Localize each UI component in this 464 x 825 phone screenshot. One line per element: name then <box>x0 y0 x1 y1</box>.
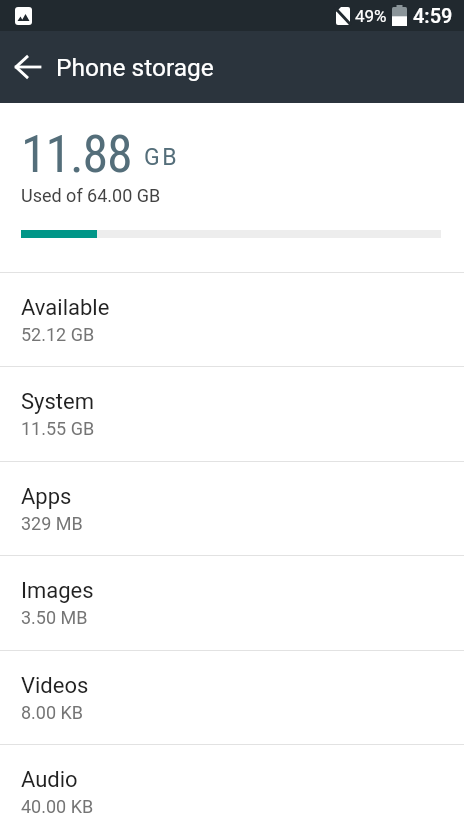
staticText: Phone storage <box>56 53 214 82</box>
staticText: 3.50 MB <box>21 607 88 628</box>
staticText: 4:59 <box>413 4 453 27</box>
staticText: 11.55 GB <box>21 418 95 439</box>
staticText: Images <box>21 578 94 604</box>
button[interactable] <box>0 31 56 103</box>
staticText: Apps <box>21 484 72 510</box>
staticText: Available <box>21 295 110 321</box>
staticText: Used of 64.00 GB <box>21 185 161 206</box>
staticText: GB <box>144 144 179 171</box>
staticText: 49% <box>355 6 387 26</box>
button[interactable]: Available <box>0 272 464 366</box>
button[interactable]: System <box>0 366 464 461</box>
button[interactable]: Apps <box>0 461 464 555</box>
staticText: Audio <box>21 767 78 793</box>
staticText: 52.12 GB <box>21 324 95 345</box>
staticText: Videos <box>21 673 89 699</box>
button[interactable]: Images <box>0 555 464 650</box>
staticText: 8.00 KB <box>21 702 84 723</box>
button[interactable]: Audio <box>0 744 464 825</box>
button[interactable]: Videos <box>0 650 464 744</box>
staticText: 329 MB <box>21 513 83 534</box>
staticText: 40.00 KB <box>21 796 94 817</box>
staticText: 11.88 <box>21 124 132 185</box>
staticText: System <box>21 389 94 415</box>
